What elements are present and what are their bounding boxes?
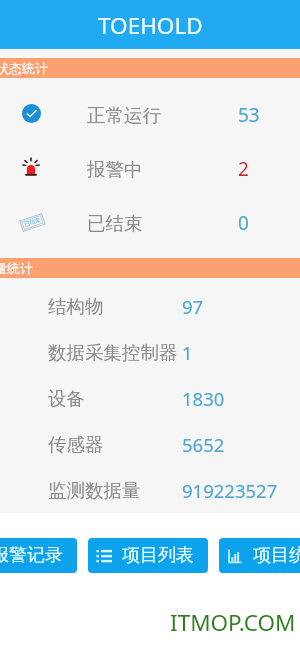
button[interactable]: 传感器 — [0, 421, 300, 467]
staticText: 设备 — [48, 387, 85, 410]
staticText: 2 — [238, 156, 249, 182]
button[interactable]: Running — [0, 86, 300, 140]
button[interactable]: 报警记录 — [0, 538, 77, 573]
staticText: 传感器 — [48, 433, 104, 456]
staticText: 结构物 — [48, 295, 104, 318]
other: Alarm — [21, 156, 41, 178]
staticText: 53 — [238, 102, 260, 128]
button[interactable]: 项目统计 — [219, 538, 300, 573]
staticText: 数量统计 — [0, 260, 33, 276]
button[interactable]: Alarm — [0, 140, 300, 194]
other: Ended — [20, 214, 45, 231]
button[interactable]: 数据采集控制器 — [0, 329, 300, 375]
other: Running — [22, 104, 41, 123]
staticText: 报警中 — [87, 158, 143, 181]
staticText: 已结束 — [23, 216, 42, 229]
staticText: 数据采集控制器 — [48, 341, 178, 364]
staticText: TOEHOLD — [98, 10, 203, 41]
button[interactable]: 监测数据量 — [0, 467, 300, 513]
staticText: 1 — [182, 340, 193, 365]
staticText: 正常运行 — [87, 104, 161, 127]
staticText: ITMOP.COM — [170, 607, 296, 638]
button[interactable]: 设备 — [0, 375, 300, 421]
staticText: 报警记录 — [0, 544, 63, 567]
staticText: 0 — [238, 210, 249, 236]
button[interactable]: 项目列表 — [88, 538, 208, 573]
staticText: 97 — [182, 294, 204, 319]
staticText: 5652 — [182, 432, 225, 457]
staticText: 919223527 — [182, 478, 278, 503]
button[interactable]: Ended — [0, 194, 300, 248]
staticText: 已结束 — [87, 212, 143, 235]
staticText: 项目统计 — [253, 544, 300, 567]
button[interactable]: 结构物 — [0, 283, 300, 329]
staticText: 状态统计 — [0, 60, 48, 76]
staticText: 1830 — [182, 386, 225, 411]
staticText: 项目列表 — [122, 544, 194, 567]
staticText: 监测数据量 — [48, 479, 141, 502]
